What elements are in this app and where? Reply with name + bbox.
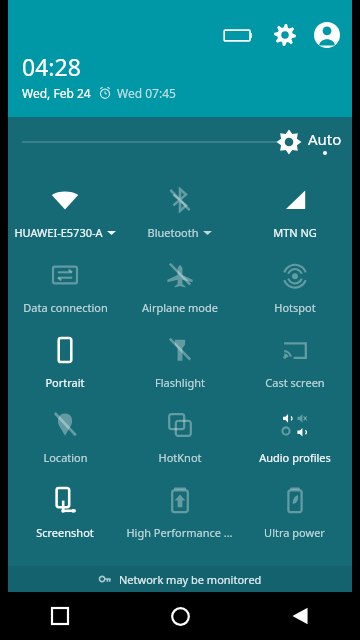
staticText: Wed, Feb 24 xyxy=(22,85,91,101)
staticText: Flashlight xyxy=(155,375,205,390)
staticText: Hotspot xyxy=(274,300,316,315)
button[interactable]: Data connection xyxy=(8,248,122,323)
button[interactable]: HUAWEI-E5730-A xyxy=(8,173,122,248)
staticText: Audio profiles xyxy=(259,450,331,465)
staticText: HotKnot xyxy=(158,450,202,465)
button[interactable]: Back xyxy=(240,592,360,640)
staticText: Airplane mode xyxy=(142,300,218,315)
staticText: Portrait xyxy=(45,375,85,390)
staticText: High Performance M… xyxy=(122,525,237,540)
button[interactable]: Bluetooth xyxy=(122,173,237,248)
staticText: Bluetooth xyxy=(147,225,199,240)
button[interactable]: HotKnot xyxy=(122,398,237,473)
staticText: Wed 07:45 xyxy=(117,85,176,101)
button[interactable]: Recents xyxy=(0,592,120,640)
button[interactable]: Airplane mode xyxy=(122,248,237,323)
staticText: Location xyxy=(43,450,88,465)
staticText: Network may be monitored xyxy=(119,572,262,587)
staticText: 04:28 xyxy=(22,51,81,82)
button[interactable]: Ultra power xyxy=(237,473,352,548)
button[interactable]: High Performance M… xyxy=(122,473,237,548)
button[interactable]: Network may be monitored xyxy=(8,566,352,592)
staticText: HUAWEI-E5730-A xyxy=(14,225,103,240)
button[interactable]: Home xyxy=(120,592,240,640)
button[interactable]: Screenshot xyxy=(8,473,122,548)
staticText: Cast screen xyxy=(265,375,325,390)
button[interactable]: Audio profiles xyxy=(237,398,352,473)
button[interactable]: MTN NG xyxy=(237,173,352,248)
staticText: MTN NG xyxy=(273,225,317,240)
staticText: Screenshot xyxy=(36,525,94,540)
staticText: Auto xyxy=(308,129,342,149)
button[interactable]: Portrait xyxy=(8,323,122,398)
button[interactable]: Location xyxy=(8,398,122,473)
staticText: Data connection xyxy=(23,300,108,315)
button[interactable]: Hotspot xyxy=(237,248,352,323)
button[interactable]: Cast screen xyxy=(237,323,352,398)
button[interactable]: Battery 100 percent xyxy=(220,24,256,46)
button[interactable]: Flashlight xyxy=(122,323,237,398)
button[interactable]: User account xyxy=(312,20,342,50)
staticText: Ultra power xyxy=(264,525,325,540)
button[interactable]: Auto xyxy=(276,129,342,155)
button[interactable]: Settings xyxy=(270,20,300,50)
